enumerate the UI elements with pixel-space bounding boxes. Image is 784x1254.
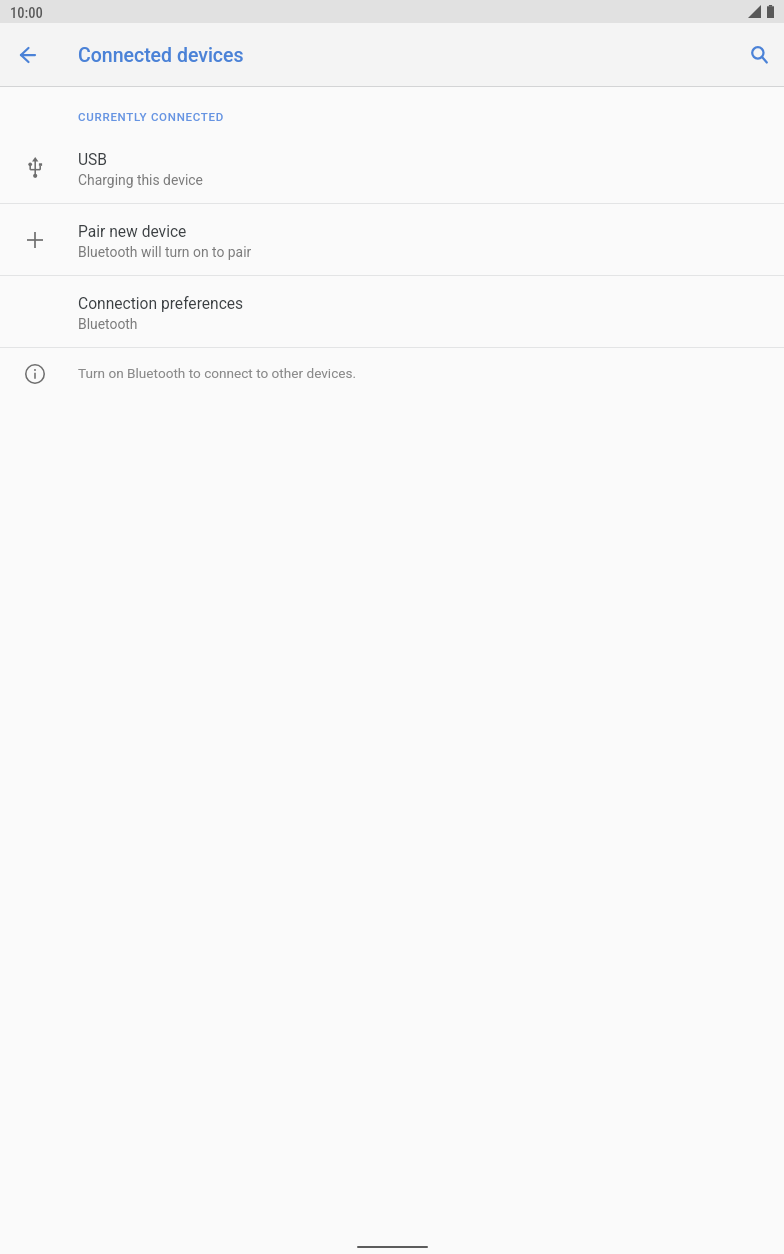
staticText: Bluetooth	[78, 316, 138, 332]
button[interactable]: Back	[4, 31, 52, 79]
staticText: Connection preferences	[78, 295, 244, 313]
staticText: Turn on Bluetooth to connect to other de…	[78, 365, 357, 381]
staticText: CURRENTLY CONNECTED	[78, 110, 224, 123]
button[interactable]: Connection preferences	[0, 276, 784, 347]
button[interactable]: USB	[0, 132, 784, 203]
button[interactable]: Pair new device	[0, 204, 784, 275]
staticText: USB	[78, 151, 108, 169]
staticText: Charging this device	[78, 172, 203, 188]
staticText: Pair new device	[78, 223, 187, 241]
staticText: Connected devices	[78, 44, 244, 67]
staticText: 10:00	[10, 4, 43, 21]
staticText: Bluetooth will turn on to pair	[78, 244, 252, 260]
button[interactable]: Search	[735, 30, 783, 78]
